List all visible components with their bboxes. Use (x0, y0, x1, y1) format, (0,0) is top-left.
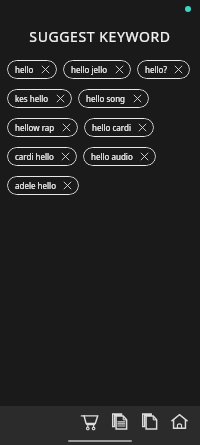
button[interactable]: hello song (78, 89, 149, 108)
button[interactable]: hello audio (83, 147, 156, 166)
staticText: hello audio (91, 151, 133, 162)
other: Remove hello audio (140, 152, 149, 161)
button[interactable]: Orders (104, 406, 134, 436)
staticText: hello song (86, 93, 126, 104)
button[interactable]: hello jello (63, 60, 131, 79)
staticText: adele hello (15, 180, 56, 191)
other: Remove hellow rap (62, 123, 71, 132)
other: Remove hello jello (115, 65, 124, 74)
button[interactable]: adele hello (7, 176, 79, 195)
staticText: hello jello (71, 64, 108, 75)
button[interactable]: hellow rap (7, 118, 78, 137)
button[interactable]: cardi hello (7, 147, 77, 166)
button[interactable]: hello cardi (84, 118, 154, 137)
button[interactable]: hello (7, 60, 57, 79)
button[interactable]: Pages (134, 406, 164, 436)
staticText: kes hello (15, 93, 49, 104)
other: Remove hello cardi (138, 123, 147, 132)
staticText: hello (15, 64, 34, 75)
staticText: hello? (145, 64, 167, 75)
other: Remove hello song (133, 94, 142, 103)
other: Remove hello? (174, 65, 183, 74)
staticText: hellow rap (15, 122, 55, 133)
other: Remove hello (41, 65, 50, 74)
other: Remove cardi hello (61, 152, 70, 161)
button[interactable]: hello? (137, 60, 190, 79)
staticText: cardi hello (15, 151, 54, 162)
other: Remove adele hello (63, 181, 72, 190)
button[interactable]: Cart (74, 406, 104, 436)
staticText: SUGGEST KEYWORD (29, 27, 171, 46)
button[interactable]: kes hello (7, 89, 72, 108)
button[interactable]: Home (164, 406, 194, 436)
other: Remove kes hello (56, 94, 65, 103)
staticText: hello cardi (92, 122, 131, 133)
